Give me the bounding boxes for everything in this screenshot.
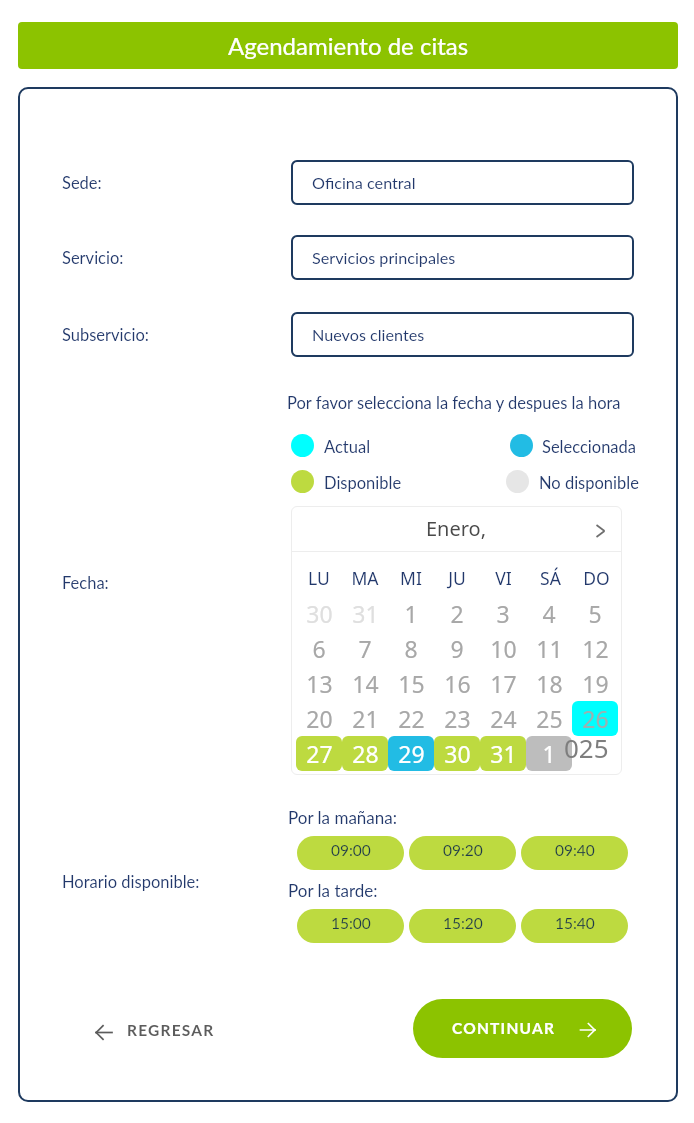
button[interactable]: 14 [342,666,388,701]
staticText: 27 [306,738,333,769]
button[interactable]: 22 [388,701,434,736]
button[interactable]: 8 [388,631,434,666]
button[interactable]: 21 [342,701,388,736]
button[interactable]: 15:00 [297,909,404,943]
button[interactable]: 7 [342,631,388,666]
button[interactable]: 1 [526,736,572,771]
staticText: 16 [444,668,471,699]
staticText: Subservicio: [62,325,149,345]
staticText: 6 [312,633,326,664]
button[interactable]: 15 [388,666,434,701]
staticText: 10 [490,633,517,664]
button[interactable]: 15:40 [521,909,628,943]
staticText: 15:00 [331,914,371,933]
button[interactable]: 16 [434,666,480,701]
button[interactable]: Next month [585,514,617,546]
staticText: 15 [398,668,425,699]
button[interactable]: Agendamiento de citas [18,22,678,69]
staticText: MI [400,566,422,590]
staticText: 30 [306,598,333,629]
button[interactable]: 09:20 [409,836,516,870]
button[interactable]: 28 [342,736,388,771]
button[interactable]: 3 [480,596,526,631]
staticText: Disponible [324,473,402,493]
staticText: 1 [404,598,418,629]
staticText: DO [583,566,610,590]
staticText: 3 [496,598,510,629]
button[interactable]: 25 [526,701,572,736]
button[interactable]: 18 [526,666,572,701]
button[interactable]: 15:20 [409,909,516,943]
staticText: 7 [358,633,372,664]
button[interactable]: 11 [526,631,572,666]
staticText: Sede: [62,173,102,193]
button[interactable]: 31 [342,596,388,631]
staticText: 14 [352,668,379,699]
button[interactable]: No disponible [506,470,606,494]
button[interactable]: 4 [526,596,572,631]
button[interactable]: Actual [291,434,338,458]
staticText: 26 [582,703,609,734]
button[interactable]: 13 [296,666,342,701]
staticText: 21 [352,703,379,734]
button[interactable]: Nuevos clientes [291,312,634,357]
button[interactable]: Seleccionada [510,434,604,458]
button[interactable]: Oficina central [291,160,634,205]
staticText: REGRESAR [127,1021,215,1040]
staticText: Por favor selecciona la fecha y despues … [287,393,621,413]
staticText: 31 [352,598,379,629]
staticText: 1 [542,738,556,769]
staticText: 13 [306,668,333,699]
staticText: 24 [490,703,517,734]
button[interactable]: 31 [480,736,526,771]
button[interactable]: 10 [480,631,526,666]
button[interactable]: 29 [388,736,434,771]
button[interactable]: 09:40 [521,836,628,870]
staticText: No disponible [539,473,639,493]
button[interactable]: 2 [434,596,480,631]
button[interactable]: 12 [572,631,618,666]
staticText: 31 [490,738,517,769]
staticText: 12 [582,633,609,664]
staticText: CONTINUAR [452,1019,556,1038]
staticText: 28 [352,738,379,769]
button[interactable]: 9 [434,631,480,666]
button[interactable]: 26 [572,701,618,736]
staticText: Seleccionada [542,437,636,457]
button[interactable]: CONTINUAR [413,999,632,1058]
staticText: 30 [444,738,471,769]
button[interactable]: 30 [434,736,480,771]
staticText: 025 [564,730,609,765]
button[interactable]: 1 [388,596,434,631]
staticText: 23 [444,703,471,734]
staticText: LU [308,566,330,590]
staticText: Actual [324,437,371,457]
button[interactable]: 6 [296,631,342,666]
button[interactable]: 5 [572,596,618,631]
staticText: Por la tarde: [288,880,378,900]
button[interactable]: Disponible [291,470,369,494]
button[interactable]: Servicios principales [291,235,634,280]
button[interactable]: 20 [296,701,342,736]
staticText: Horario disponible: [62,872,200,892]
button[interactable]: 27 [296,736,342,771]
staticText: 17 [490,668,517,699]
staticText: 29 [398,738,425,769]
button[interactable]: 30 [296,596,342,631]
button[interactable]: 23 [434,701,480,736]
button[interactable]: 24 [480,701,526,736]
staticText: 25 [536,703,563,734]
staticText: Oficina central [312,173,416,192]
button[interactable]: 09:00 [297,836,404,870]
button[interactable]: REGRESAR [86,1006,226,1054]
staticText: 18 [536,668,563,699]
button[interactable]: 17 [480,666,526,701]
staticText: 15:20 [443,914,483,933]
staticText: Fecha: [62,573,109,593]
button[interactable]: 19 [572,666,618,701]
staticText: 11 [536,633,563,664]
staticText: 09:20 [443,841,483,860]
staticText: SÁ [540,566,561,590]
staticText: 20 [306,703,333,734]
staticText: Agendamiento de citas [228,31,469,60]
